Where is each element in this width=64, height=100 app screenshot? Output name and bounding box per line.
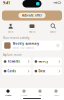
staticText: Weekly summary [13, 42, 40, 46]
staticText: Explore more [3, 53, 22, 57]
button[interactable]: Weekly summary [0, 41, 64, 50]
staticText: Home [5, 93, 11, 97]
button[interactable]: Rewards [2, 57, 31, 65]
button[interactable]: More [48, 89, 64, 97]
button[interactable]: Data [33, 67, 62, 75]
staticText: Pay [38, 93, 41, 97]
staticText: Rewards [8, 60, 20, 63]
staticText: More [53, 93, 58, 97]
staticText: Search [50, 30, 57, 34]
button[interactable]: Send [0, 23, 21, 34]
button[interactable]: Wallet [21, 23, 43, 34]
staticText: 9:41 [3, 0, 10, 5]
button[interactable]: Cards [2, 67, 31, 75]
button[interactable]: Pay [32, 89, 48, 97]
button[interactable]: Home [0, 89, 16, 97]
staticText: Your recent activity [3, 36, 29, 40]
button[interactable]: Search [43, 23, 64, 34]
button[interactable]: Cards [16, 89, 32, 97]
staticText: Send [8, 30, 14, 34]
staticText: Cards [21, 93, 27, 97]
staticText: Money [38, 60, 47, 63]
button[interactable]: Money [33, 57, 62, 65]
staticText: Wallet [28, 30, 35, 34]
staticText: Data [38, 69, 45, 73]
button[interactable]: Activate offer [0, 10, 64, 20]
staticText: Activate offer [22, 13, 42, 17]
staticText: Cards [8, 69, 16, 73]
staticText: Review your spending [13, 46, 34, 49]
